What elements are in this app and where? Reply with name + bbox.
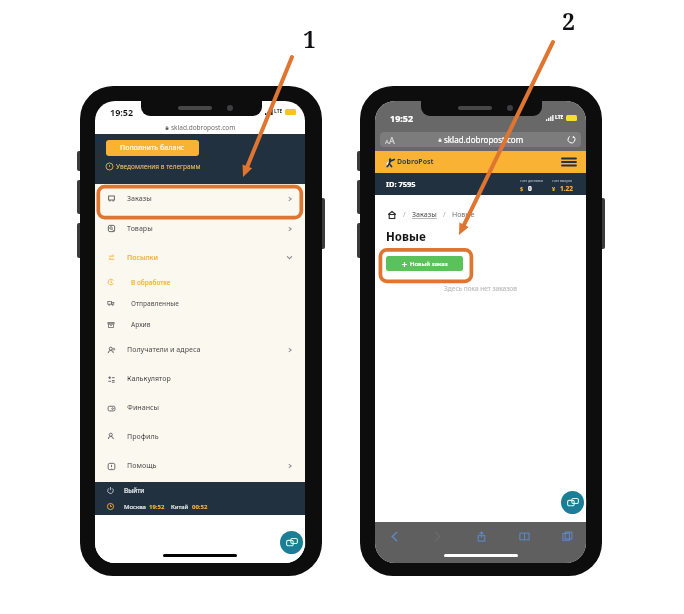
staticText: Финансы <box>127 403 160 413</box>
staticText: Москва <box>124 503 146 511</box>
button[interactable]: Получатели и адреса <box>95 336 305 364</box>
staticText: Здесь пока нет заказов <box>375 284 586 293</box>
staticText: Выйти <box>124 486 145 495</box>
button[interactable]: Tabs <box>558 527 576 545</box>
staticText: LTE <box>555 114 564 121</box>
button[interactable]: Пополнить баланс <box>106 140 199 156</box>
button[interactable]: Товары <box>95 213 305 244</box>
staticText: Профиль <box>127 432 159 442</box>
staticText: 1.22 <box>560 184 573 193</box>
button[interactable]: Home <box>387 210 397 220</box>
button[interactable]: Menu <box>562 157 576 167</box>
staticText: В обработке <box>131 278 171 287</box>
button[interactable]: Заказы <box>95 184 305 213</box>
staticText: Помощь <box>127 461 157 471</box>
staticText: Калькулятор <box>127 374 171 384</box>
button[interactable]: В обработке <box>95 271 305 293</box>
staticText: sklad.dobropost.com <box>444 134 524 145</box>
button[interactable]: Калькулятор <box>95 364 305 394</box>
staticText: 19:52 <box>149 503 165 511</box>
staticText: Новые <box>452 210 475 220</box>
staticText: 2 <box>562 5 575 36</box>
button[interactable]: Новый заказ <box>386 256 463 271</box>
button[interactable]: Share <box>472 527 490 545</box>
staticText: ¥ <box>552 185 556 192</box>
staticText: 1 <box>303 23 316 54</box>
staticText: A <box>389 134 395 146</box>
staticText: Посылки <box>127 253 158 263</box>
button[interactable]: Back <box>385 527 403 545</box>
staticText: счет доставки <box>520 178 543 183</box>
staticText: Отправленные <box>131 299 179 308</box>
staticText: $ <box>520 185 524 192</box>
button[interactable]: Архив <box>95 313 305 336</box>
staticText: Получатели и адреса <box>127 345 201 355</box>
staticText: 00:52 <box>192 503 208 511</box>
button[interactable]: Помощь <box>95 451 305 481</box>
staticText: Уведомления в телеграмм <box>116 162 201 171</box>
staticText: A <box>385 138 389 146</box>
staticText: Пополнить баланс <box>120 143 185 153</box>
staticText: Товары <box>127 224 153 234</box>
staticText: счет выкупа <box>552 178 572 183</box>
button[interactable]: Посылки <box>95 244 305 271</box>
button[interactable]: Профиль <box>95 422 305 451</box>
staticText: Новый заказ <box>410 260 448 268</box>
button[interactable]: Text size <box>380 132 581 147</box>
staticText: 0 <box>528 184 532 193</box>
button[interactable]: Text size <box>385 134 395 146</box>
staticText: DobroPost <box>397 157 434 167</box>
staticText: / <box>403 210 406 220</box>
staticText: sklad.dobropost.com <box>171 123 236 132</box>
staticText: Архив <box>131 320 151 329</box>
button[interactable]: Выйти <box>95 482 305 498</box>
staticText: ID: 7595 <box>386 179 416 189</box>
staticText: 19:52 <box>390 112 414 124</box>
other: Reload <box>568 136 575 143</box>
staticText: Новые <box>386 229 426 245</box>
staticText: / <box>443 210 446 220</box>
button[interactable]: Chat support <box>558 488 587 517</box>
staticText: LTE <box>274 108 283 115</box>
staticText: 19:52 <box>110 106 134 118</box>
button[interactable]: DobroPost <box>386 157 434 167</box>
button[interactable]: Bookmarks <box>515 527 533 545</box>
button[interactable]: Финансы <box>95 394 305 422</box>
staticText: Заказы <box>127 194 152 204</box>
button[interactable]: Заказы <box>412 210 437 220</box>
staticText: Китай <box>171 503 189 511</box>
button[interactable]: Отправленные <box>95 293 305 313</box>
button[interactable]: Chat support <box>277 528 306 557</box>
button[interactable]: Уведомления в телеграмм <box>106 162 201 171</box>
